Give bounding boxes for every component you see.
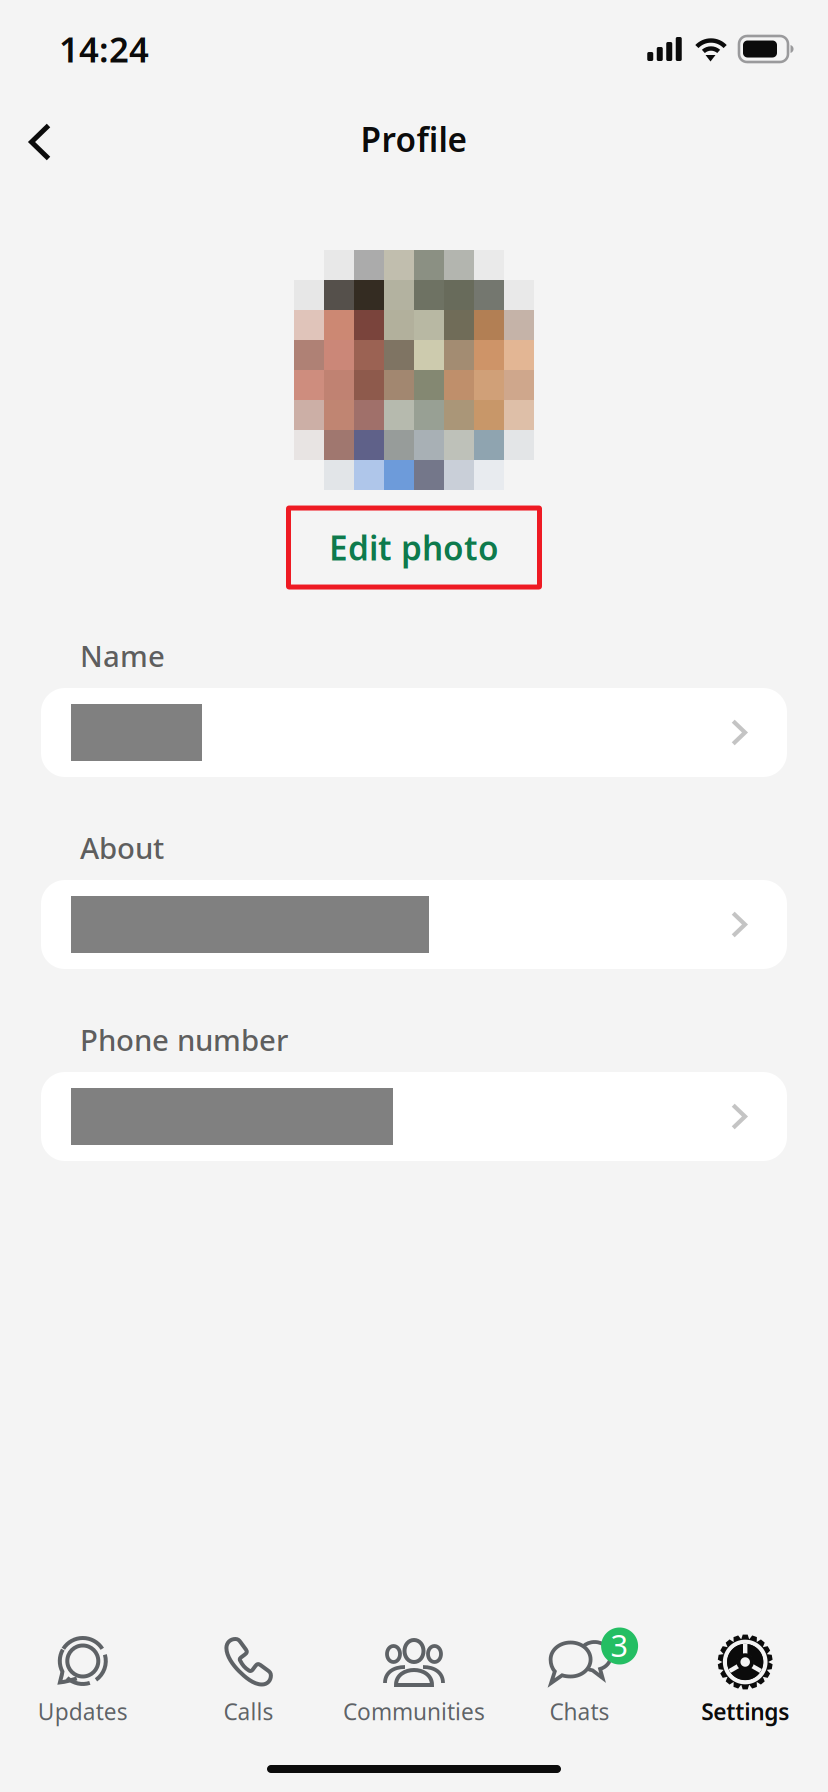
staticText: Settings: [701, 1696, 789, 1726]
staticText: Phone number: [80, 1020, 288, 1059]
staticText: Profile: [360, 117, 467, 161]
staticText: 3: [611, 1625, 629, 1665]
button[interactable]: Phone number: [0, 1072, 828, 1161]
button[interactable]: Updates: [0, 1636, 166, 1723]
button[interactable]: About: [0, 880, 828, 969]
button[interactable]: 3: [497, 1636, 662, 1723]
button[interactable]: Communities: [331, 1636, 497, 1723]
staticText: About: [80, 828, 164, 867]
button[interactable]: Back: [0, 99, 80, 179]
button[interactable]: Calls: [166, 1636, 331, 1723]
staticText: Calls: [223, 1696, 273, 1726]
staticText: Edit photo: [329, 525, 499, 570]
staticText: Communities: [343, 1696, 485, 1726]
staticText: 14:24: [59, 26, 149, 72]
staticText: Updates: [38, 1696, 128, 1726]
button[interactable]: Edit photo: [288, 508, 539, 587]
button[interactable]: Name: [0, 688, 828, 777]
staticText: Name: [80, 636, 165, 675]
staticText: Chats: [550, 1696, 610, 1726]
button[interactable]: Settings: [662, 1636, 828, 1723]
